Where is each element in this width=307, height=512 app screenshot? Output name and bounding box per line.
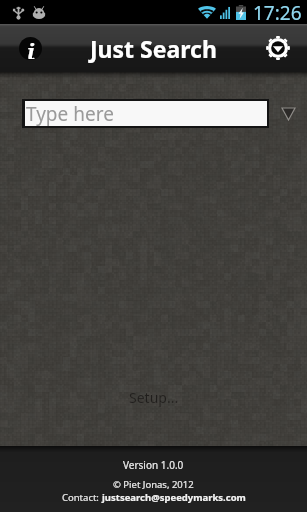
button[interactable]: Info (19, 37, 42, 60)
button[interactable]: Setup... (129, 388, 179, 407)
staticText: 17:26 (253, 0, 302, 24)
staticText: i (27, 37, 35, 59)
staticText: Contact: (62, 491, 102, 504)
staticText: © Piet Jonas, 2012 (113, 478, 194, 491)
staticText: Version 1.0.0 (123, 458, 184, 472)
button[interactable]: justsearch@speedymarks.com (102, 491, 246, 504)
button[interactable]: Dropdown (269, 99, 307, 128)
button[interactable]: Settings (266, 36, 290, 60)
button[interactable]: Type here (25, 101, 267, 126)
staticText: Just Search (90, 33, 217, 64)
staticText: Type here (26, 101, 114, 126)
